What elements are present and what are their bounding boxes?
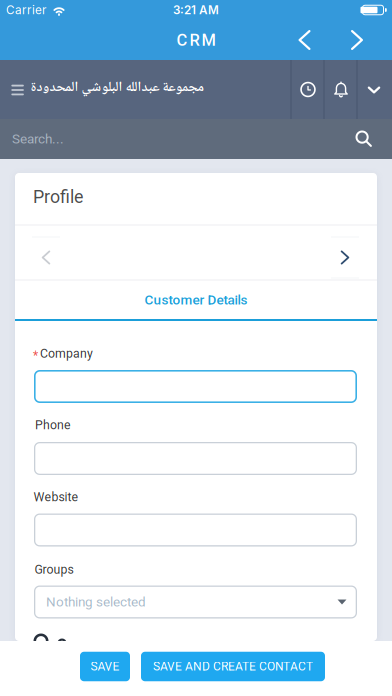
staticText: Phone xyxy=(35,418,71,432)
staticText: Groups xyxy=(34,562,73,577)
staticText: Website xyxy=(33,490,78,504)
staticText: مجموعة عبدالله البلوشي المحدودة xyxy=(30,76,204,100)
staticText: Nothing selected xyxy=(46,594,146,610)
staticText: Profile xyxy=(33,187,83,207)
staticText: SAVE xyxy=(90,659,119,674)
staticText: 3:21 AM xyxy=(173,3,219,17)
staticText: CRM xyxy=(176,30,215,50)
staticText: Carrier xyxy=(6,3,46,17)
staticText: Search... xyxy=(12,131,64,147)
staticText: SAVE AND CREATE CONTACT xyxy=(153,659,313,674)
staticText: Company xyxy=(40,346,93,361)
staticText: * xyxy=(33,348,38,363)
staticText: Customer Details xyxy=(144,292,247,308)
